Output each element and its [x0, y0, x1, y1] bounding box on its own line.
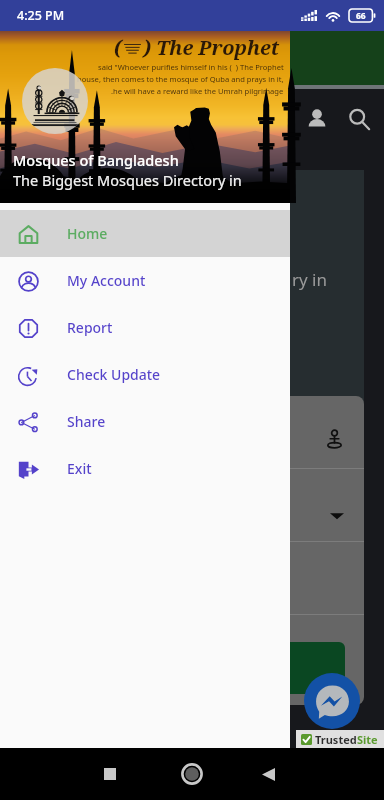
staticText: Exit	[67, 459, 92, 478]
staticText: house, then comes to the mosque of Quba …	[77, 74, 284, 84]
staticText: Share	[67, 412, 106, 431]
button[interactable]: Exit	[0, 445, 290, 492]
button[interactable]: Messenger chat	[304, 673, 360, 729]
staticText: said "Whoever purifies himself in his ( …	[98, 62, 284, 72]
button[interactable]: My Account	[0, 257, 290, 304]
staticText: Check Update	[67, 365, 161, 384]
staticText: Report	[67, 318, 113, 337]
staticText: 4:25 PM	[17, 7, 65, 24]
staticText: ry in	[292, 268, 328, 291]
staticText: ) The Prophet	[143, 34, 280, 61]
staticText: (	[114, 34, 122, 61]
button[interactable]	[14, 642, 345, 694]
staticText: Trusted	[315, 732, 357, 747]
button[interactable]: Report	[0, 304, 290, 351]
staticText: Site	[357, 732, 378, 747]
staticText: My Account	[67, 271, 146, 290]
staticText: Mosques of Bangladesh	[13, 150, 179, 170]
staticText: Home	[67, 224, 108, 243]
button[interactable]: Share	[0, 398, 290, 445]
button[interactable]: Back	[244, 750, 292, 798]
button[interactable]: Recent apps	[86, 750, 134, 798]
button[interactable]: Home	[0, 210, 290, 257]
staticText: The Biggest Mosques Directory in	[13, 170, 242, 190]
button[interactable]: Home	[168, 750, 216, 798]
staticText: .he will have a reward like the Umrah pi…	[111, 86, 284, 96]
staticText: 66	[356, 10, 366, 22]
button[interactable]: Search	[338, 98, 380, 140]
button[interactable]: Account	[296, 98, 338, 140]
button[interactable]: Check Update	[0, 351, 290, 398]
